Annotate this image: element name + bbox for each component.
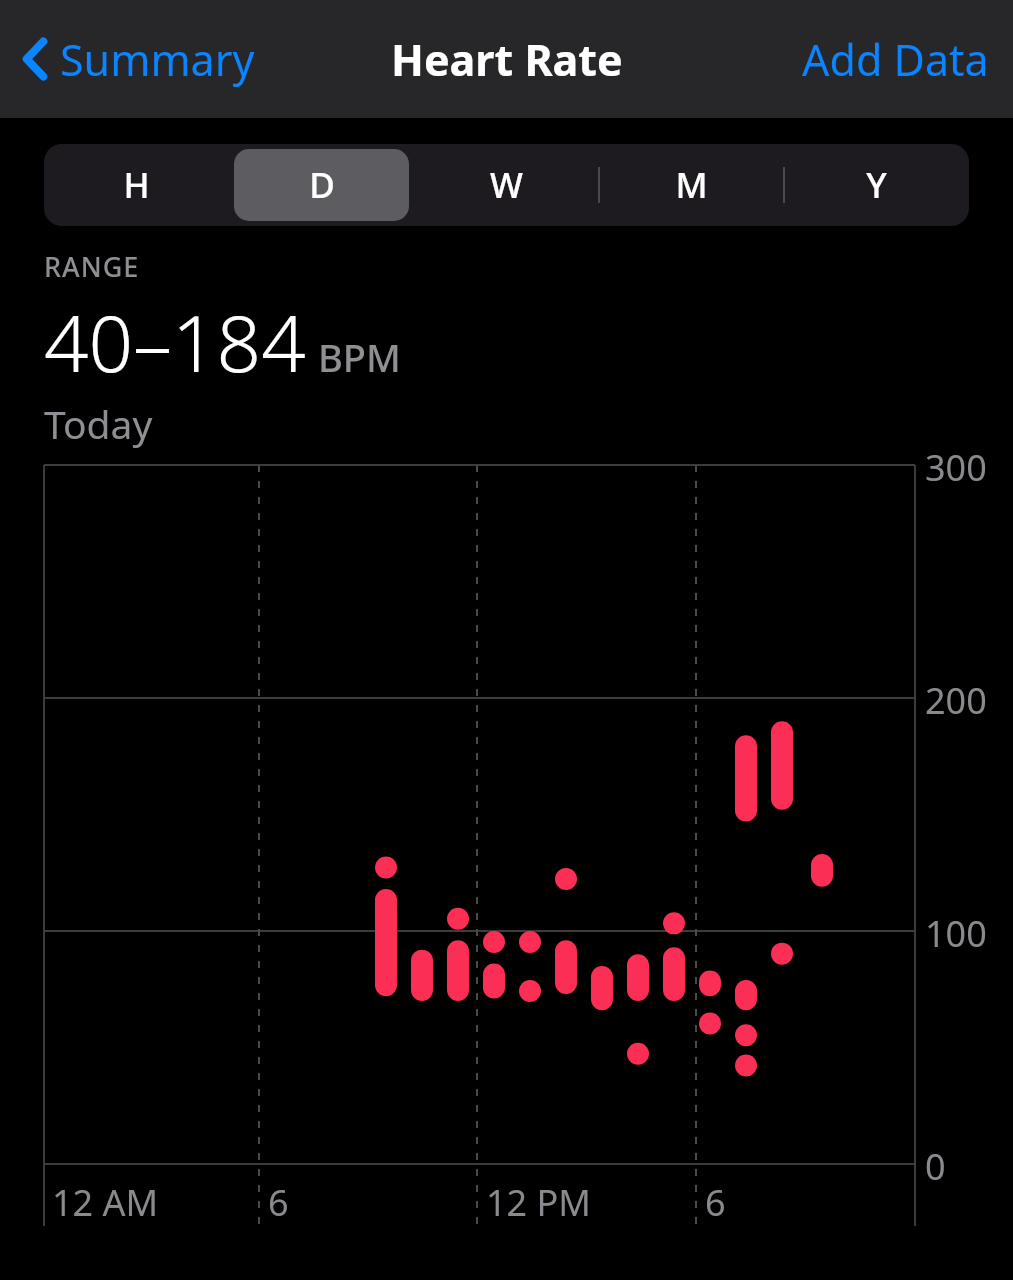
staticText: W <box>490 161 523 209</box>
staticText: BPM <box>318 331 401 383</box>
staticText: 12 AM <box>52 1178 159 1227</box>
staticText: H <box>123 161 150 209</box>
staticText: D <box>309 161 335 209</box>
staticText: 40–184 <box>44 289 306 395</box>
staticText: Today <box>44 397 153 450</box>
staticText: Y <box>866 161 887 209</box>
staticText: Add Data <box>802 30 989 89</box>
staticText: 200 <box>925 676 987 725</box>
staticText: Heart Rate <box>391 30 623 89</box>
button[interactable]: Add Data <box>778 0 1013 118</box>
staticText: RANGE <box>44 248 140 285</box>
button[interactable]: W <box>419 149 594 221</box>
staticText: 6 <box>705 1178 726 1227</box>
staticText: 100 <box>925 909 987 958</box>
staticText: 12 PM <box>486 1178 591 1227</box>
staticText: 300 <box>925 443 987 492</box>
staticText: M <box>675 161 708 209</box>
button[interactable]: Summary <box>0 0 269 118</box>
staticText: Summary <box>60 30 255 89</box>
staticText: 6 <box>268 1178 289 1227</box>
staticText: 0 <box>925 1142 946 1191</box>
button[interactable]: M <box>604 149 779 221</box>
button[interactable]: Y <box>789 149 964 221</box>
button[interactable]: D <box>234 149 409 221</box>
button[interactable]: H <box>49 149 224 221</box>
